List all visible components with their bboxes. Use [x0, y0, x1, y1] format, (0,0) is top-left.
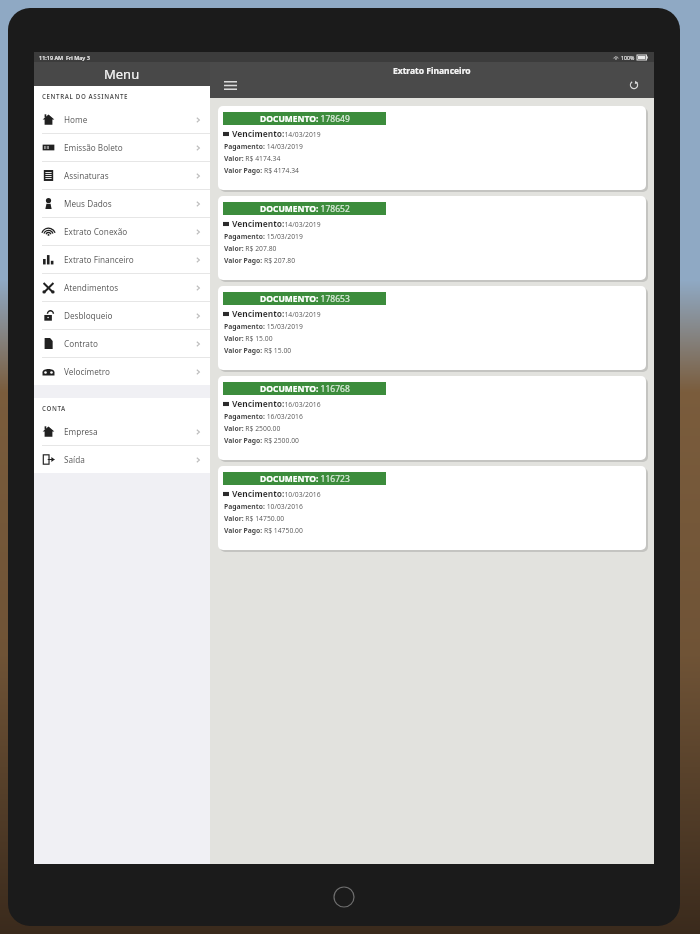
button[interactable]: Home: [34, 106, 210, 133]
staticText: 100%: [621, 54, 635, 61]
staticText: Assinaturas: [64, 170, 109, 181]
button[interactable]: Refresh: [624, 75, 644, 95]
staticText: Extrato Financeiro: [393, 65, 471, 77]
staticText: Valor Pago: R$ 14750.00: [224, 526, 303, 535]
staticText: Extrato Financeiro: [64, 254, 134, 265]
staticText: Emissão Boleto: [64, 142, 123, 153]
staticText: Valor Pago: R$ 207.80: [224, 256, 296, 265]
staticText: DOCUMENTO: 116723: [260, 473, 350, 485]
staticText: Home: [64, 114, 88, 125]
button[interactable]: DOCUMENTO: 178653: [218, 286, 646, 370]
staticText: Menu: [104, 65, 140, 83]
button[interactable]: Extrato Conexão: [34, 217, 210, 245]
staticText: DOCUMENTO: 178652: [260, 203, 350, 215]
staticText: Valor: R$ 4174.34: [224, 154, 281, 163]
staticText: DOCUMENTO: 178653: [260, 293, 350, 305]
staticText: Pagamento: 10/03/2016: [224, 502, 303, 511]
button[interactable]: Contrato: [34, 329, 210, 357]
button[interactable]: DOCUMENTO: 178652: [218, 196, 646, 280]
staticText: Extrato Conexão: [64, 226, 128, 237]
button[interactable]: Assinaturas: [34, 161, 210, 189]
staticText: Saída: [64, 454, 85, 465]
staticText: Valor Pago: R$ 4174.34: [224, 166, 299, 175]
staticText: Contrato: [64, 338, 98, 349]
staticText: Pagamento: 15/03/2019: [224, 322, 303, 331]
staticText: Empresa: [64, 426, 98, 437]
staticText: Pagamento: 15/03/2019: [224, 232, 303, 241]
staticText: Valor: R$ 14750.00: [224, 514, 285, 523]
staticText: Pagamento: 16/03/2016: [224, 412, 303, 421]
button[interactable]: Extrato Financeiro: [34, 245, 210, 273]
button[interactable]: DOCUMENTO: 116768: [218, 376, 646, 460]
button[interactable]: Desbloqueio: [34, 301, 210, 329]
staticText: Desbloqueio: [64, 310, 113, 321]
staticText: Meus Dados: [64, 198, 112, 209]
staticText: Velocímetro: [64, 366, 110, 377]
staticText: CONTA: [42, 404, 66, 412]
button[interactable]: Atendimentos: [34, 273, 210, 301]
button[interactable]: Meus Dados: [34, 189, 210, 217]
staticText: Valor Pago: R$ 2500.00: [224, 436, 299, 445]
button[interactable]: Saída: [34, 445, 210, 473]
button[interactable]: Home: [333, 886, 355, 908]
staticText: Vencimento:14/03/2019: [232, 218, 321, 229]
button[interactable]: DOCUMENTO: 178649: [218, 106, 646, 190]
staticText: Vencimento:10/03/2016: [232, 488, 321, 499]
staticText: Valor: R$ 207.80: [224, 244, 277, 253]
staticText: DOCUMENTO: 116768: [260, 383, 350, 395]
button[interactable]: Menu: [220, 75, 240, 95]
staticText: CENTRAL DO ASSINANTE: [42, 92, 129, 100]
button[interactable]: DOCUMENTO: 116723: [218, 466, 646, 550]
button[interactable]: Velocímetro: [34, 357, 210, 385]
staticText: Valor Pago: R$ 15.00: [224, 346, 292, 355]
staticText: Valor: R$ 2500.00: [224, 424, 281, 433]
button[interactable]: Menu: [34, 62, 210, 86]
staticText: Vencimento:14/03/2019: [232, 308, 321, 319]
button[interactable]: Emissão Boleto: [34, 133, 210, 161]
staticText: Pagamento: 14/03/2019: [224, 142, 303, 151]
staticText: DOCUMENTO: 178649: [260, 113, 350, 125]
staticText: Atendimentos: [64, 282, 119, 293]
staticText: Vencimento:16/03/2016: [232, 398, 321, 409]
staticText: Vencimento:14/03/2019: [232, 128, 321, 139]
button[interactable]: Empresa: [34, 418, 210, 445]
staticText: Valor: R$ 15.00: [224, 334, 273, 343]
staticText: 11:19 AM Fri May 3: [39, 54, 90, 61]
